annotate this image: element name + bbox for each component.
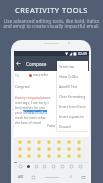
button[interactable]: Paste	[44, 121, 58, 130]
button[interactable]: Emoji	[64, 152, 74, 159]
button[interactable]: Emoji	[44, 145, 54, 152]
staticText: Paste	[47, 124, 56, 128]
button[interactable]: Send now	[59, 61, 88, 71]
staticText: Compose	[26, 61, 47, 67]
staticText: the best of travel	[15, 120, 42, 124]
button[interactable]: Emoji	[54, 152, 64, 159]
button[interactable]: Emoji	[24, 138, 34, 145]
staticText: marriage, I am sorry I couldn't	[15, 100, 52, 104]
button[interactable]: Emoji	[15, 138, 24, 145]
button[interactable]: Emoji	[64, 145, 74, 152]
staticText: mary.teller	[33, 73, 49, 77]
button[interactable]: Category	[32, 163, 40, 170]
button[interactable]: Clear Formatting	[59, 91, 88, 101]
button[interactable]: Emoji	[74, 145, 84, 152]
button[interactable]: Back	[14, 56, 23, 71]
button[interactable]: Emoji	[34, 145, 44, 152]
staticText: Discard	[59, 124, 71, 128]
button[interactable]: Backspace	[77, 170, 89, 183]
button[interactable]: Category	[58, 163, 67, 170]
button[interactable]: Emoji	[64, 138, 74, 145]
staticText: 02:39	[78, 51, 87, 56]
button[interactable]: Category	[16, 163, 24, 170]
staticText: :-)	[69, 175, 72, 179]
button[interactable]: Emoji keyboard	[27, 170, 39, 183]
button[interactable]: Category	[76, 163, 85, 170]
button[interactable]: Emoji	[54, 138, 64, 145]
button[interactable]: Category	[49, 163, 58, 170]
button[interactable]: Emoji	[24, 152, 34, 159]
button[interactable]: Emoji	[34, 152, 44, 159]
button[interactable]: Emoji	[74, 138, 84, 145]
button[interactable]: Insert signature	[59, 111, 88, 121]
staticText: Insert from Drive	[59, 104, 86, 108]
button[interactable]: Autofill Text	[59, 81, 88, 91]
button[interactable]: Discard	[59, 121, 88, 131]
staticText: Congrats!	[15, 84, 31, 89]
staticText: future together	[23, 110, 47, 114]
staticText: CREATIVITY TOOLS	[15, 5, 88, 15]
button[interactable]: Emoji	[15, 152, 24, 159]
button[interactable]: Category	[40, 163, 49, 170]
button[interactable]: Emoji	[15, 145, 24, 152]
button[interactable]: Insert from Drive	[59, 101, 88, 111]
button[interactable]: Category	[67, 163, 76, 170]
button[interactable]: Emoji	[44, 138, 54, 145]
staticText: best wishes for you both as	[15, 105, 52, 109]
button[interactable]: Space	[39, 170, 64, 183]
button[interactable]: Emoji	[24, 145, 34, 152]
button[interactable]: ABC	[14, 170, 27, 183]
staticText: stock for each other	[15, 115, 46, 119]
staticText: Insert signature	[59, 114, 84, 118]
button[interactable]: Emoji	[54, 145, 64, 152]
button[interactable]: Emoji	[34, 138, 44, 145]
button[interactable]: Emoji	[44, 152, 54, 159]
button[interactable]: Category	[24, 163, 32, 170]
staticText: your	[15, 110, 23, 114]
button[interactable]: Emoji	[74, 152, 84, 159]
staticText: Show Cc/Bcc	[59, 74, 79, 78]
staticText: Send now	[59, 64, 75, 68]
staticText: Use advanced editing tools, like bold, i…	[3, 18, 100, 30]
button[interactable]: Show Cc/Bcc	[59, 71, 88, 81]
staticText: To	[15, 73, 19, 78]
staticText: ABC	[18, 175, 24, 179]
button[interactable]: Emoticons	[64, 170, 77, 183]
staticText: Clear Formatting	[59, 94, 86, 98]
staticText: Hearty congratulations on your	[15, 95, 52, 99]
staticText: Autofill Text	[59, 84, 78, 88]
